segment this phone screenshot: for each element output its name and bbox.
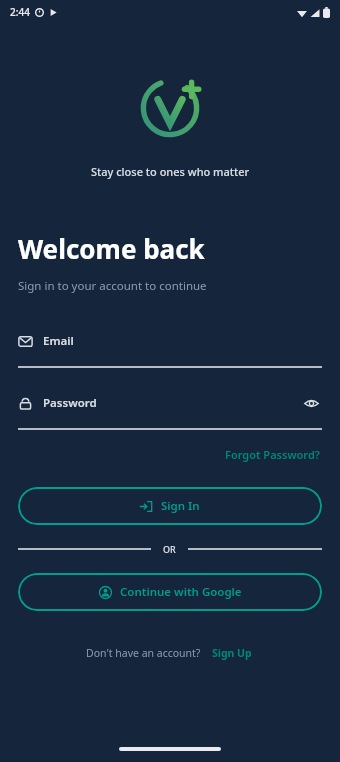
button[interactable]: Forgot Password? [223,444,322,465]
button[interactable]: Password [18,390,322,430]
staticText: Password [43,395,97,411]
staticText: Sign in to your account to continue [18,278,207,294]
staticText: Welcome back [18,231,205,266]
staticText: Forgot Password? [225,447,320,462]
staticText: Don't have an account? [86,646,201,660]
staticText: OR [163,543,176,555]
button[interactable]: Sign In [18,487,322,525]
button[interactable]: Email [18,328,322,368]
staticText: Sign In [161,498,200,514]
button[interactable]: Continue with Google [18,573,322,611]
staticText: Sign Up [212,646,252,660]
staticText: Continue with Google [120,584,242,600]
button[interactable]: Sign Up [209,643,255,663]
button[interactable]: Toggle password visibility [300,392,322,414]
staticText: Stay close to ones who matter [91,164,250,179]
staticText: Email [43,333,74,349]
staticText: 2:44 [10,5,30,19]
